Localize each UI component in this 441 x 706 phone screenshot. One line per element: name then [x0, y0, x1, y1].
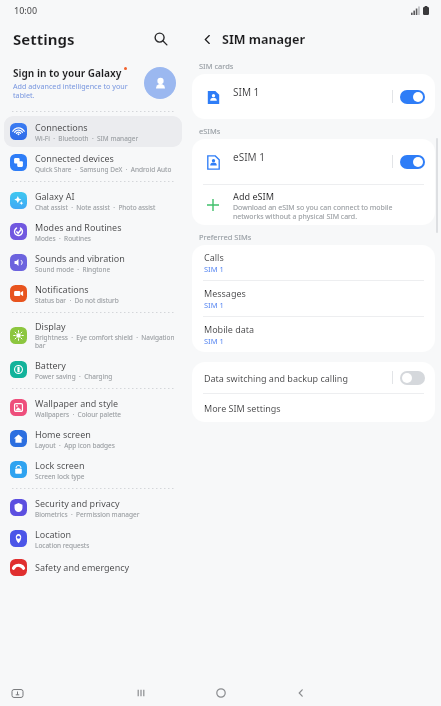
- staticText: Sign in to your Galaxy: [13, 66, 122, 80]
- button[interactable]: Calls: [192, 245, 435, 280]
- staticText: Add eSIM: [233, 190, 274, 202]
- staticText: Home screen: [35, 428, 91, 440]
- staticText: SIM 1: [233, 85, 392, 99]
- staticText: Messages: [204, 287, 246, 299]
- button[interactable]: Mobile data: [192, 317, 435, 352]
- button[interactable]: More SIM settings: [192, 394, 435, 422]
- staticText: Wi-Fi · Bluetooth · SIM manager: [35, 134, 139, 143]
- staticText: Screen lock type: [35, 472, 85, 481]
- staticText: Safety and emergency: [35, 561, 130, 573]
- staticText: Display: [35, 320, 66, 332]
- button[interactable]: Notifications: [4, 278, 182, 309]
- staticText: Data switching and backup calling: [204, 372, 392, 384]
- button[interactable]: Modes and Routines: [4, 216, 182, 247]
- staticText: Location requests: [35, 541, 90, 550]
- staticText: Mobile data: [204, 323, 255, 335]
- button[interactable]: Galaxy AI: [4, 185, 182, 216]
- button[interactable]: Screenshot: [8, 684, 26, 702]
- staticText: eSIM 1: [233, 150, 392, 164]
- staticText: Biometrics · Permission manager: [35, 510, 140, 519]
- staticText: Calls: [204, 251, 224, 263]
- staticText: Layout · App icon badges: [35, 441, 115, 450]
- button[interactable]: Battery: [4, 354, 182, 385]
- button[interactable]: Back: [196, 28, 218, 50]
- button[interactable]: Data switching and backup calling: [192, 362, 435, 393]
- staticText: SIM manager: [222, 31, 306, 48]
- staticText: Add advanced intelligence to your tablet…: [13, 81, 138, 100]
- staticText: More SIM settings: [204, 402, 281, 414]
- staticText: Status bar · Do not disturb: [35, 296, 119, 305]
- staticText: Security and privacy: [35, 497, 120, 509]
- staticText: Brightness · Eye comfort shield · Naviga…: [35, 333, 176, 350]
- button[interactable]: Add eSIM: [192, 185, 435, 225]
- staticText: Lock screen: [35, 459, 85, 471]
- button[interactable]: Toggle: [400, 371, 425, 385]
- button[interactable]: Back: [261, 680, 341, 706]
- staticText: Sound mode · Ringtone: [35, 265, 111, 274]
- button[interactable]: Home: [181, 680, 261, 706]
- staticText: Power saving · Charging: [35, 372, 113, 381]
- staticText: Preferred SIMs: [199, 232, 252, 242]
- staticText: Wallpaper and style: [35, 397, 119, 409]
- button[interactable]: Safety and emergency: [4, 554, 182, 580]
- button[interactable]: Recents: [101, 680, 181, 706]
- staticText: SIM 1: [204, 300, 224, 310]
- staticText: Notifications: [35, 283, 89, 295]
- staticText: Sounds and vibration: [35, 252, 125, 264]
- button[interactable]: eSIM 1: [192, 139, 435, 184]
- button[interactable]: Home screen: [4, 423, 182, 454]
- staticText: Modes · Routines: [35, 234, 91, 243]
- staticText: Galaxy AI: [35, 190, 75, 202]
- staticText: Chat assist · Note assist · Photo assist: [35, 203, 156, 212]
- button[interactable]: Security and privacy: [4, 492, 182, 523]
- staticText: eSIMs: [199, 126, 221, 136]
- button[interactable]: Messages: [192, 281, 435, 316]
- staticText: Modes and Routines: [35, 221, 122, 233]
- button[interactable]: Search: [148, 26, 174, 52]
- staticText: Download an eSIM so you can connect to m…: [233, 203, 423, 221]
- button[interactable]: Connections: [4, 116, 182, 147]
- staticText: Battery: [35, 359, 66, 371]
- button[interactable]: Wallpaper and style: [4, 392, 182, 423]
- button[interactable]: Lock screen: [4, 454, 182, 485]
- staticText: Location: [35, 528, 72, 540]
- button[interactable]: Display: [4, 316, 182, 354]
- button[interactable]: Sign in to your Galaxy: [0, 58, 186, 108]
- staticText: Wallpapers · Colour palette: [35, 410, 121, 419]
- staticText: SIM 1: [204, 336, 224, 346]
- button[interactable]: Toggle: [400, 155, 425, 169]
- staticText: Settings: [13, 29, 75, 49]
- staticText: Quick Share · Samsung DeX · Android Auto: [35, 165, 172, 174]
- staticText: Connected devices: [35, 152, 114, 164]
- button[interactable]: Connected devices: [4, 147, 182, 178]
- staticText: Connections: [35, 121, 88, 133]
- button[interactable]: Toggle: [400, 90, 425, 104]
- staticText: 10:00: [14, 4, 38, 16]
- button[interactable]: Location: [4, 523, 182, 554]
- button[interactable]: Sounds and vibration: [4, 247, 182, 278]
- staticText: SIM cards: [199, 61, 234, 71]
- staticText: SIM 1: [204, 264, 224, 274]
- button[interactable]: SIM 1: [192, 74, 435, 119]
